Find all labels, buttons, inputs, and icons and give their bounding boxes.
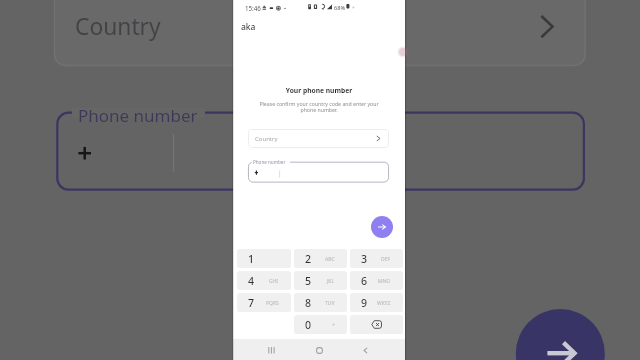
button[interactable]: Delete	[350, 315, 403, 334]
staticText: WXYZ	[377, 300, 391, 307]
staticText: Country	[255, 135, 278, 143]
button[interactable]: Back	[362, 347, 369, 354]
staticText: DEF	[381, 256, 391, 263]
staticText: 4	[248, 274, 255, 288]
staticText: Please confirm your country code and ent…	[241, 100, 397, 114]
staticText: Phone number	[253, 159, 286, 165]
staticText: Phone number	[78, 104, 198, 127]
button[interactable]: Recent apps	[268, 347, 275, 354]
button[interactable]: Continue	[371, 216, 393, 238]
staticText: 1	[248, 252, 255, 266]
button[interactable]: 4	[237, 271, 291, 290]
staticText: JKL	[327, 278, 335, 285]
staticText: GHI	[269, 278, 279, 285]
staticText: TUV	[325, 300, 335, 307]
staticText: +	[332, 322, 335, 329]
button[interactable]: 7	[237, 293, 291, 312]
button[interactable]: 6	[350, 271, 403, 290]
staticText: 9	[361, 296, 368, 310]
button[interactable]: 2	[294, 249, 347, 268]
button[interactable]: 8	[294, 293, 347, 312]
staticText: 3	[361, 252, 368, 266]
staticText: 7	[248, 296, 255, 310]
staticText: 68%	[334, 4, 346, 12]
staticText: 8	[305, 296, 312, 310]
button[interactable]: 1	[237, 249, 291, 268]
staticText: PQRS	[266, 300, 279, 307]
staticText: 2	[305, 252, 312, 266]
button[interactable]: Phone number	[248, 157, 389, 183]
button[interactable]: 0	[294, 315, 347, 334]
staticText: ABC	[325, 256, 335, 263]
staticText: 0	[305, 318, 312, 332]
other: Delete	[371, 320, 382, 329]
staticText: Country	[75, 11, 161, 42]
staticText: MNO	[378, 278, 391, 285]
staticText: 15:46	[245, 4, 261, 12]
staticText: 5	[305, 274, 312, 288]
staticText: 6	[361, 274, 368, 288]
staticText: Your phone number	[233, 86, 405, 95]
button[interactable]: Country	[248, 129, 389, 148]
button[interactable]: 9	[350, 293, 403, 312]
staticText: aka	[241, 21, 256, 33]
button[interactable]: 5	[294, 271, 347, 290]
button[interactable]: 3	[350, 249, 403, 268]
button[interactable]: Home	[316, 347, 323, 354]
